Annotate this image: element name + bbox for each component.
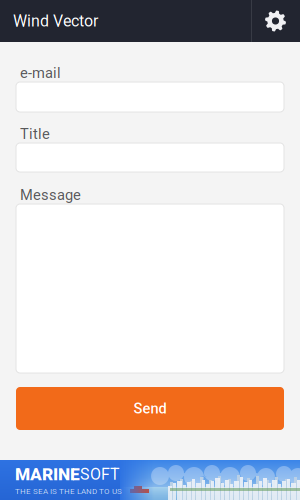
staticText: SOFT: [80, 465, 120, 484]
staticText: Wind Vector: [13, 12, 98, 30]
staticText: e-mail: [20, 64, 61, 82]
staticText: THE SEA IS THE LAND TO US: [15, 486, 122, 496]
staticText: Send: [133, 400, 166, 417]
staticText: Title: [20, 125, 50, 143]
staticText: Message: [20, 186, 81, 204]
button[interactable]: Send: [0, 387, 300, 430]
staticText: MARINE: [15, 464, 80, 484]
button[interactable]: Settings: [251, 0, 300, 42]
